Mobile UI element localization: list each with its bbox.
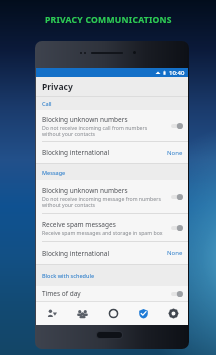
button[interactable]: Privacy	[128, 302, 158, 325]
staticText: Blocking unknown numbers	[42, 186, 128, 195]
staticText: Message	[42, 169, 66, 176]
button[interactable]: Blocking international	[36, 242, 188, 264]
button[interactable]: Receive spam messages	[36, 214, 188, 242]
staticText: Times of day	[42, 289, 81, 298]
staticText: Do not receive incoming message from num…	[42, 195, 161, 209]
button[interactable]: Blocking unknown numbers	[36, 180, 188, 214]
staticText: Blocking international	[42, 148, 167, 157]
staticText: Privacy	[42, 81, 73, 93]
button[interactable]: Groups	[67, 302, 98, 325]
staticText: PRIVACY COMMUNICATIONS	[45, 14, 172, 26]
staticText: Do not receive incoming call from number…	[42, 124, 148, 138]
staticText: Blocking international	[42, 249, 167, 258]
button[interactable]: Keypad	[98, 302, 128, 325]
staticText: Block with schedule	[42, 272, 95, 279]
button[interactable]: Blocking unknown numbers	[36, 110, 188, 142]
staticText: None	[167, 249, 183, 257]
button[interactable]: Settings	[158, 302, 188, 325]
staticText: Call	[42, 100, 52, 107]
staticText: Receive spam messages	[42, 220, 116, 229]
button[interactable]: Times of day	[36, 286, 188, 301]
staticText: Receive spam messages and storage in spa…	[42, 229, 163, 236]
staticText: Blocking unknown numbers	[42, 115, 128, 124]
staticText: None	[167, 149, 183, 157]
button[interactable]: Contacts	[36, 302, 67, 325]
button[interactable]: Blocking international	[36, 142, 188, 163]
staticText: 10:40	[169, 69, 185, 77]
